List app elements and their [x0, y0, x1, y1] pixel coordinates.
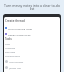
staticText: Design review recap [8, 33, 31, 36]
button[interactable]: Alex Morgan [4, 58, 60, 64]
staticText: Create thread [5, 19, 25, 23]
staticText: Due date [5, 50, 16, 53]
staticText: Sprint planning notes [8, 27, 33, 30]
staticText: Assignee [5, 46, 16, 49]
button[interactable]: Jordan Lee [4, 64, 60, 70]
staticText: Alex Morgan [9, 60, 24, 63]
staticText: Turn messy notes into a clear to-do list [3, 3, 61, 11]
staticText: Title [5, 42, 10, 45]
staticText: Collaborators [5, 54, 21, 57]
staticText: Tasks [5, 37, 12, 41]
button[interactable]: Sprint planning notes [4, 25, 60, 31]
staticText: Jordan Lee [9, 66, 21, 69]
button[interactable]: Design review recap [4, 31, 60, 37]
